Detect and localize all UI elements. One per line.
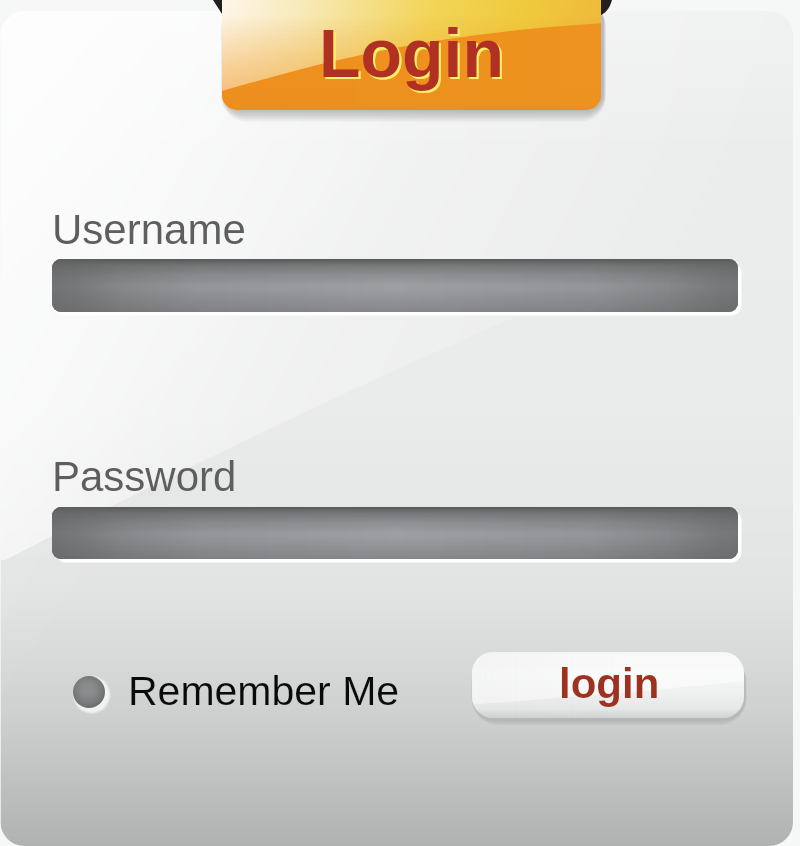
button[interactable]: Password field	[52, 507, 738, 559]
button[interactable]: login	[472, 652, 744, 718]
button[interactable]: Username field	[52, 259, 738, 312]
staticText: Login	[319, 15, 505, 91]
button[interactable]: Remember Me	[70, 664, 405, 718]
staticText: Username	[52, 206, 246, 253]
staticText: Remember Me	[128, 668, 400, 714]
staticText: Password	[52, 453, 237, 500]
staticText: login	[559, 660, 660, 707]
staticText: Login	[321, 17, 507, 93]
